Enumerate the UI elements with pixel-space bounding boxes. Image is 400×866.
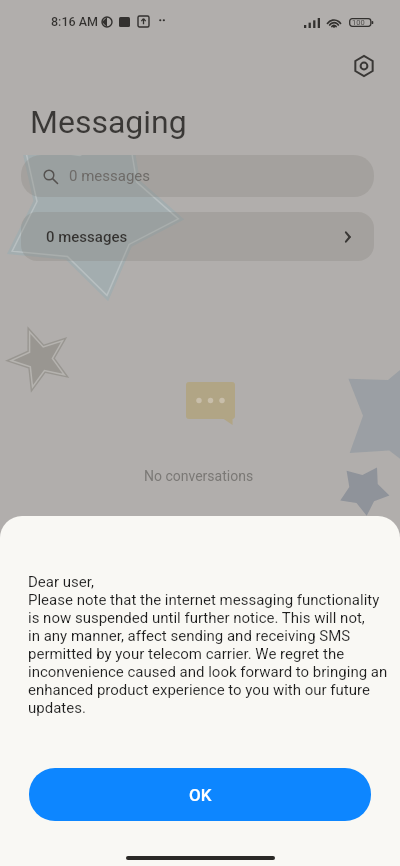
staticText: Messaging [30, 103, 187, 141]
button[interactable]: 0 messages [21, 212, 374, 261]
button[interactable]: OK [29, 768, 371, 821]
staticText: 0 messages [69, 167, 151, 185]
staticText: 100 [352, 18, 365, 27]
staticText: No conversations [144, 468, 254, 484]
staticText: Dear user, Please note that the internet… [28, 573, 388, 717]
button[interactable]: 0 messages [21, 155, 374, 197]
staticText: 0 messages [46, 228, 128, 246]
staticText: 8:16 AM [51, 14, 98, 29]
staticText: OK [189, 785, 212, 805]
button[interactable]: Settings [349, 51, 379, 81]
